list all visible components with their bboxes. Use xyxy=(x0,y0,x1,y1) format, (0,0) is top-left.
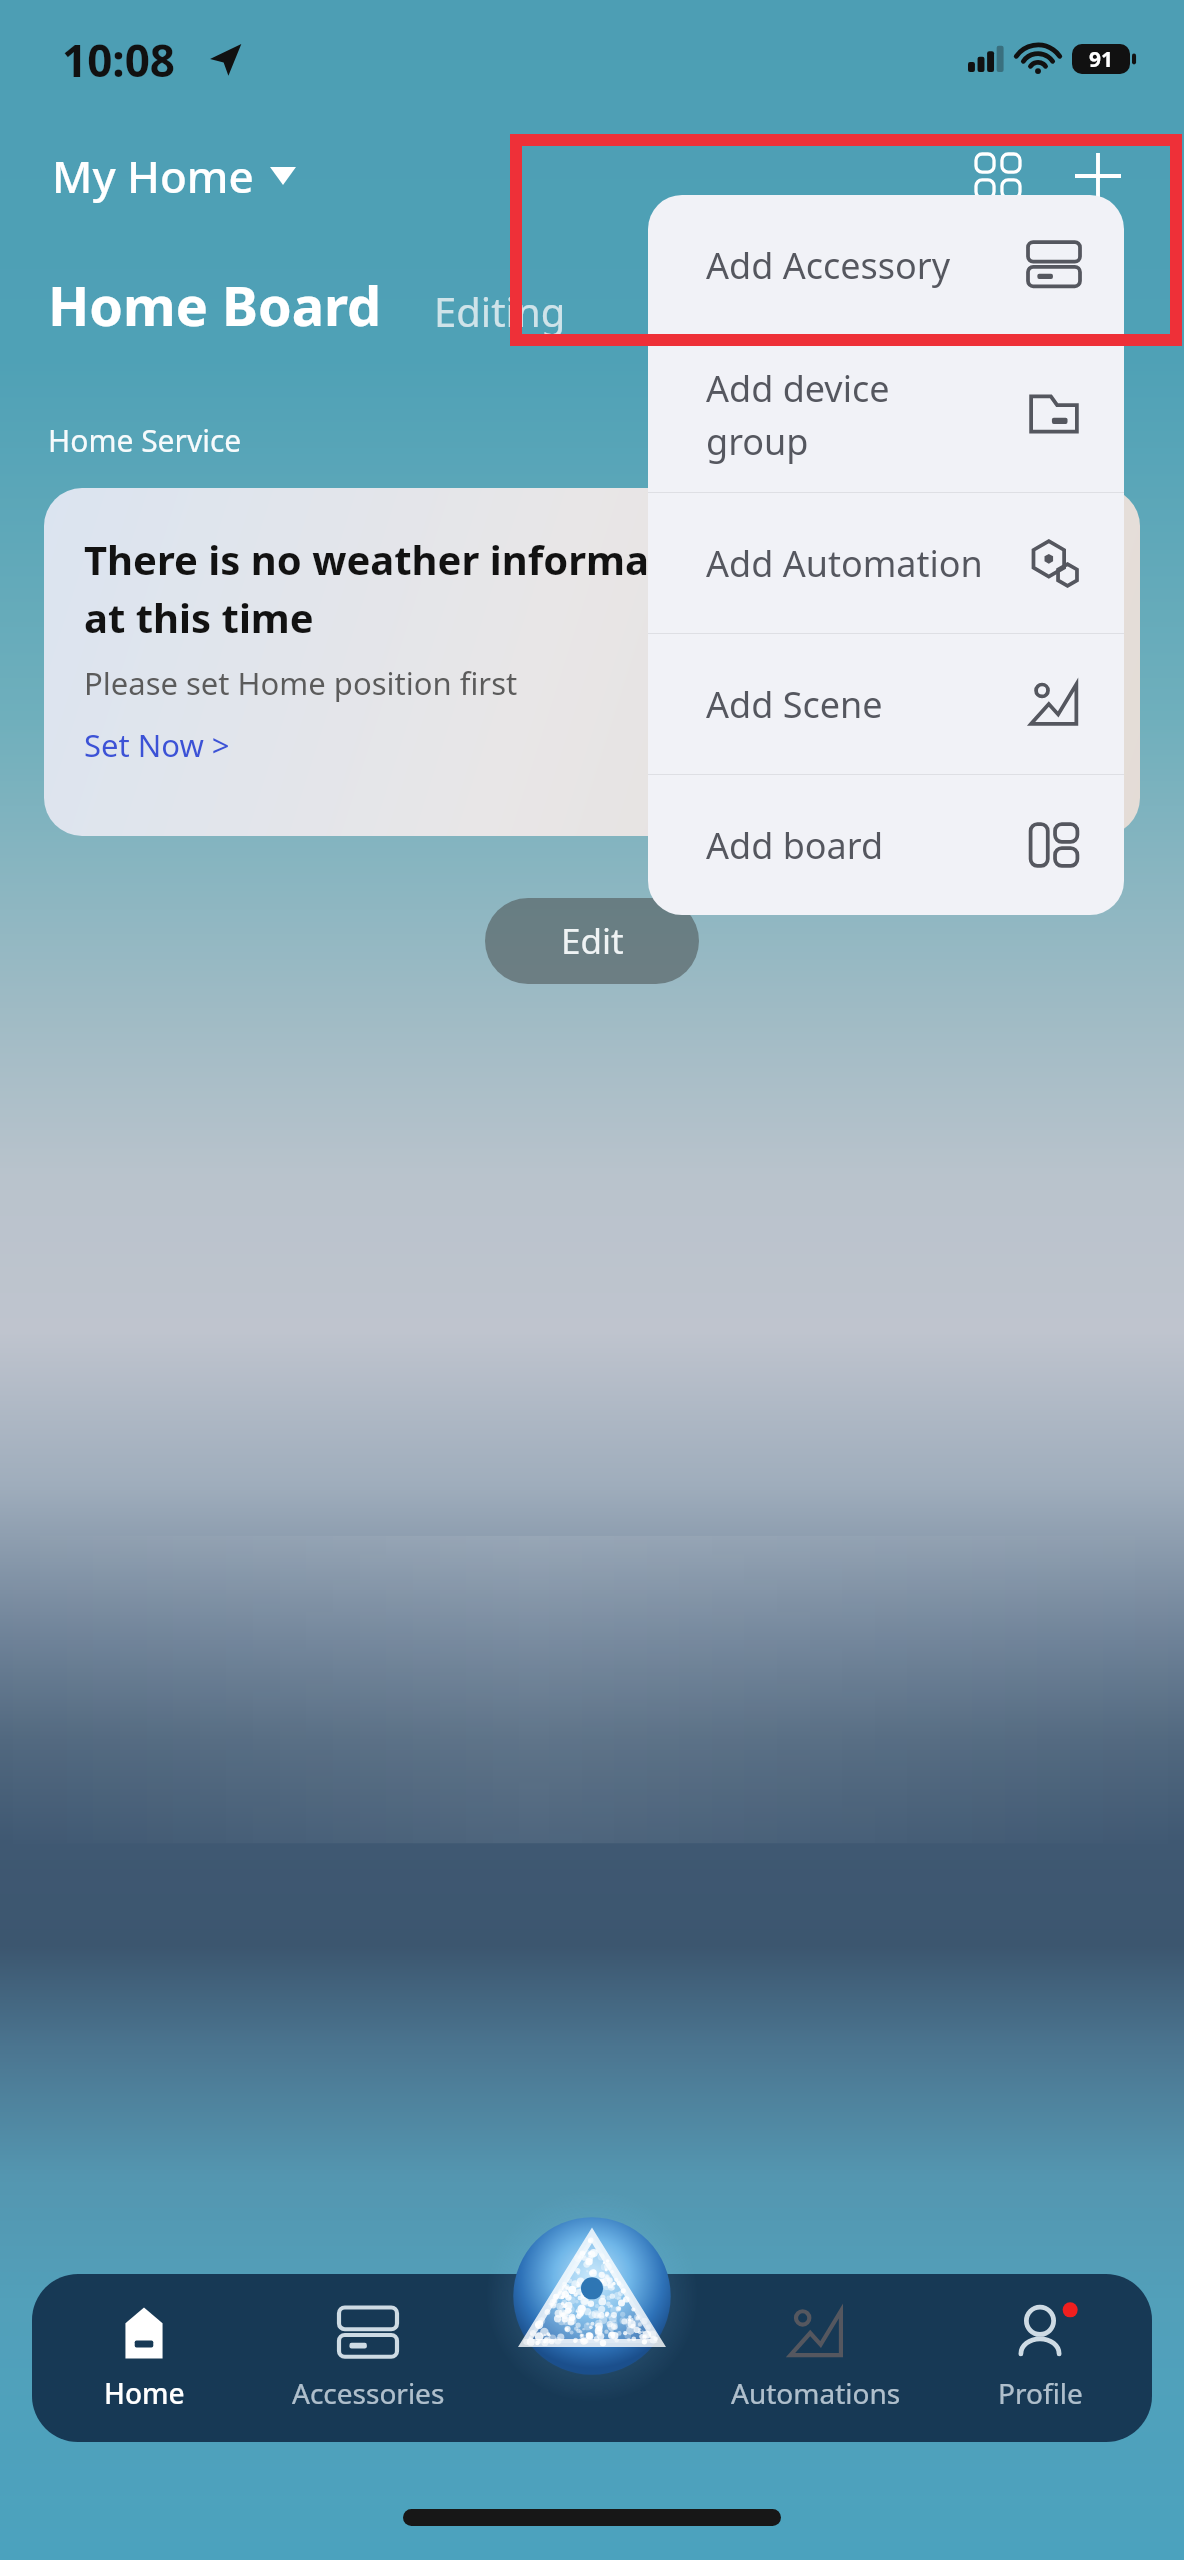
button[interactable]: Set Now > xyxy=(84,724,230,766)
staticText: Edit xyxy=(561,917,624,965)
staticText: Editing xyxy=(434,284,566,338)
button[interactable]: Add device group xyxy=(648,336,1124,492)
button[interactable]: Profile xyxy=(928,2274,1152,2442)
staticText: 10:08 xyxy=(62,30,176,90)
staticText: Please set Home position first xyxy=(84,662,518,704)
button[interactable]: Add board xyxy=(648,775,1124,915)
staticText: Add device group xyxy=(706,364,1028,465)
staticText: Home Board xyxy=(48,268,382,342)
staticText: Automations xyxy=(731,2374,901,2412)
staticText: Add Scene xyxy=(706,680,1028,729)
button[interactable]: Edit xyxy=(485,898,699,984)
button[interactable]: Add Automation xyxy=(648,493,1124,633)
staticText: Home Service xyxy=(48,420,242,461)
button[interactable]: Grid view xyxy=(960,138,1036,214)
staticText: Accessories xyxy=(292,2374,445,2412)
staticText: Add board xyxy=(706,821,1028,870)
button[interactable]: Automations xyxy=(704,2274,928,2442)
button[interactable]: There is no weather information at this … xyxy=(44,488,1140,836)
button[interactable]: Add Accessory xyxy=(648,195,1124,335)
button[interactable]: Add Scene xyxy=(648,634,1124,774)
staticText: There is no weather information at this … xyxy=(84,532,730,644)
staticText: Home xyxy=(104,2374,185,2412)
button[interactable]: Accessories xyxy=(256,2274,480,2442)
staticText: 91 xyxy=(1089,45,1114,74)
staticText: Add Automation xyxy=(706,539,1028,588)
staticText: Add Accessory xyxy=(706,241,1028,290)
button[interactable]: My Home xyxy=(52,146,296,206)
button[interactable]: Add xyxy=(1060,138,1136,214)
staticText: Profile xyxy=(998,2374,1083,2412)
button[interactable]: Assistant xyxy=(496,2200,688,2392)
button[interactable]: Home xyxy=(32,2274,256,2442)
staticText: My Home xyxy=(52,146,254,206)
